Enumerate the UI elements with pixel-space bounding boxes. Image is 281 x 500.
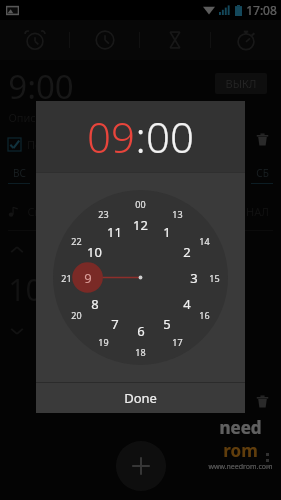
staticText: 4: [183, 295, 191, 313]
staticText: 6: [137, 322, 145, 340]
staticText: 12: [133, 216, 148, 234]
staticText: 09: [87, 108, 135, 165]
staticText: 17:08: [246, 2, 277, 18]
staticText: 11: [107, 223, 122, 241]
staticText: 9: [84, 269, 92, 287]
staticText: 19: [98, 336, 109, 348]
staticText: 9:00: [8, 64, 74, 102]
staticText: ВЫКЛ: [225, 76, 257, 91]
staticText: 00: [135, 198, 146, 210]
button[interactable]: ВЫКЛ: [215, 73, 267, 94]
button[interactable]: СР: [130, 166, 152, 184]
staticText: 17: [172, 336, 183, 348]
staticText: 14: [199, 235, 210, 247]
staticText: Сигнал: [27, 204, 66, 219]
staticText: ВТ: [94, 166, 107, 180]
staticText: ПТ: [216, 166, 229, 180]
button[interactable]: ЧТ: [170, 166, 192, 184]
staticText: 20: [71, 309, 82, 321]
button[interactable]: 09: [87, 108, 135, 165]
staticText: :: [135, 108, 146, 165]
staticText: Повтор: [27, 137, 66, 152]
staticText: Описание: [8, 110, 62, 125]
staticText: rom: [223, 439, 258, 462]
staticText: 3: [190, 269, 198, 287]
staticText: 00: [146, 108, 194, 165]
staticText: ЧТ: [175, 166, 188, 180]
staticText: 8: [91, 295, 99, 313]
staticText: 7: [111, 315, 119, 333]
staticText: СР: [135, 166, 148, 180]
staticText: 10: [87, 243, 102, 261]
button[interactable]: ПН: [49, 166, 71, 184]
staticText: 1: [163, 223, 171, 241]
staticText: 10:: [8, 269, 51, 310]
button[interactable]: Clock face hour selector: [36, 173, 245, 382]
button[interactable]: ВТ: [89, 166, 111, 184]
button[interactable]: ПТ: [211, 166, 233, 184]
button[interactable]: ВС: [8, 166, 30, 184]
staticText: www.needrom.com: [208, 462, 273, 472]
staticText: 5: [163, 315, 171, 333]
staticText: need: [219, 416, 262, 439]
button[interactable]: Delete alarm: [251, 390, 273, 412]
button[interactable]: Delete alarm: [251, 128, 273, 150]
staticText: 18: [135, 346, 146, 358]
staticText: 21: [61, 272, 72, 284]
button[interactable]: Done: [36, 383, 245, 413]
staticText: ПН: [53, 166, 68, 180]
staticText: 23: [98, 208, 109, 220]
staticText: 22: [71, 235, 82, 247]
staticText: 2: [183, 243, 191, 261]
staticText: 16: [199, 309, 210, 321]
staticText: НАЛ: [246, 204, 269, 219]
staticText: ВС: [13, 166, 26, 180]
button[interactable]: Add alarm: [116, 441, 166, 491]
staticText: 15: [209, 272, 220, 284]
button[interactable]: More options: [262, 449, 273, 472]
staticText: СБ: [256, 166, 269, 180]
staticText: 13: [172, 208, 183, 220]
button[interactable]: СБ: [251, 166, 273, 184]
button[interactable]: 00: [146, 108, 194, 165]
staticText: Done: [124, 389, 157, 407]
